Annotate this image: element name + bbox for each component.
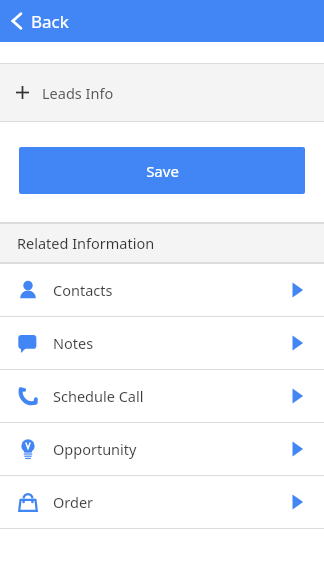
other: Open Contacts	[289, 280, 305, 300]
staticText: Schedule Call	[53, 386, 144, 406]
other: Open Notes	[289, 333, 305, 353]
button[interactable]: Schedule Call	[0, 370, 324, 422]
button[interactable]: Save	[19, 147, 305, 194]
button[interactable]: Opportunity	[0, 423, 324, 475]
button[interactable]: Back	[0, 0, 81, 42]
staticText: Related Information	[17, 233, 155, 253]
button[interactable]: Contacts	[0, 264, 324, 316]
staticText: Opportunity	[53, 439, 137, 459]
other: Open Opportunity	[289, 439, 305, 459]
staticText: Order	[53, 492, 94, 512]
staticText: Leads Info	[42, 83, 114, 103]
button[interactable]: Notes	[0, 317, 324, 369]
staticText: Save	[146, 161, 179, 181]
staticText: Back	[31, 10, 69, 33]
other: Open Order	[289, 492, 305, 512]
button[interactable]: Order	[0, 476, 324, 528]
staticText: Contacts	[53, 280, 113, 300]
other: Open Schedule Call	[289, 386, 305, 406]
staticText: Notes	[53, 333, 94, 353]
